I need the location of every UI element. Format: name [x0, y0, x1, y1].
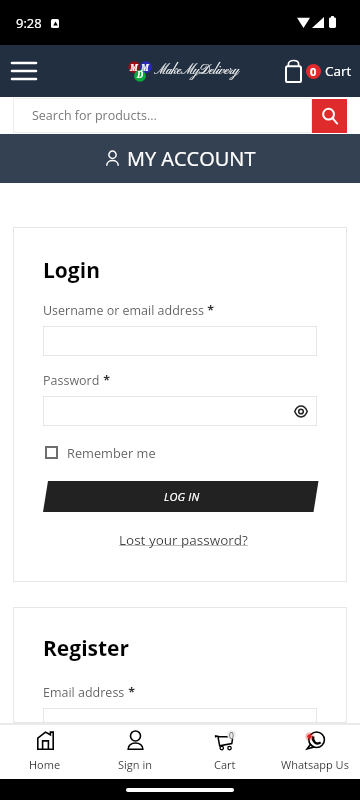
button[interactable] — [43, 326, 317, 356]
button[interactable]: 0 — [180, 723, 270, 779]
button[interactable]: Remember me — [45, 444, 156, 461]
staticText: LOG IN — [164, 489, 200, 504]
staticText: MakeMyDelivery — [154, 63, 239, 79]
staticText: MY ACCOUNT — [127, 145, 256, 172]
staticText: Home — [29, 757, 61, 772]
staticText: * — [204, 302, 215, 319]
button[interactable]: Lost your password? — [119, 531, 248, 549]
staticText: Email address — [43, 684, 125, 701]
staticText: Sign in — [118, 757, 152, 772]
button[interactable]: LOG IN — [43, 481, 316, 512]
staticText: Cart — [325, 62, 352, 80]
staticText: * — [125, 684, 136, 701]
staticText: Cart — [214, 757, 236, 772]
button[interactable]: Show password — [43, 396, 317, 426]
button[interactable]: Whatsapp Us — [270, 723, 360, 779]
button[interactable]: Search — [312, 99, 347, 133]
staticText: Login — [43, 256, 100, 285]
button[interactable]: Home — [0, 723, 90, 779]
staticText: D — [137, 69, 144, 80]
button[interactable] — [43, 708, 317, 723]
staticText: 9:28 — [16, 14, 42, 32]
button[interactable]: Search for products... — [13, 98, 312, 133]
staticText: Remember me — [67, 444, 156, 461]
staticText: * — [100, 372, 111, 389]
button[interactable]: 0 — [285, 59, 352, 83]
staticText: M — [130, 62, 138, 73]
button[interactable]: Menu — [0, 45, 48, 97]
staticText: 0 — [229, 730, 234, 739]
staticText: Register — [43, 634, 130, 663]
staticText: Username or email address — [43, 302, 204, 319]
staticText: 0 — [310, 64, 317, 79]
staticText: Password — [43, 372, 100, 389]
other: Show password — [294, 407, 308, 416]
staticText: Whatsapp Us — [281, 757, 349, 772]
staticText: Search for products... — [32, 107, 157, 124]
button[interactable]: Sign in — [90, 723, 180, 779]
staticText: M — [141, 62, 149, 73]
